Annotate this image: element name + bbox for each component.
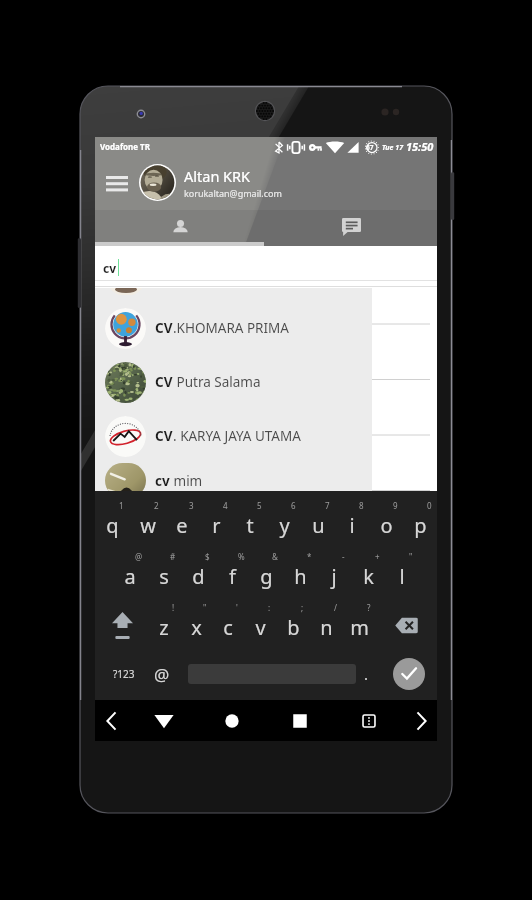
staticText: @ [135,551,143,562]
staticText: 0 [427,500,432,511]
button[interactable]: CV [95,301,372,355]
staticText: # [170,551,176,562]
staticText: - [342,551,345,562]
button[interactable]: Messages tab [266,210,437,246]
button[interactable]: Space [178,648,361,700]
staticText: k [363,563,374,590]
button[interactable]: Recents [278,700,322,741]
button[interactable]: / [310,597,343,648]
button[interactable]: Backspace [376,597,437,648]
staticText: CV [155,319,173,337]
button[interactable]: : [244,597,277,648]
staticText: v [255,614,266,641]
staticText: .KHOMARA PRIMA [173,319,289,337]
button[interactable]: - [317,546,351,597]
button[interactable]: ' [212,597,244,648]
button[interactable]: 8 [335,495,369,546]
button[interactable]: @ [146,648,178,700]
staticText: d [192,563,205,590]
staticText: 3 [189,500,194,511]
staticText: 2 [154,500,159,511]
staticText: s [159,563,169,590]
button[interactable]: Shift [95,597,148,648]
button[interactable]: + [351,546,385,597]
staticText: 4 [223,500,228,511]
staticText: cv [155,472,170,490]
staticText: 1 [119,500,124,511]
button[interactable]: # [147,546,181,597]
staticText: q [106,512,119,539]
button[interactable]: @ [113,546,147,597]
button[interactable]: 7 [301,495,335,546]
staticText: korukaltan@gmail.com [184,187,282,199]
button[interactable]: 1 [95,495,130,546]
button[interactable]: 2 [130,495,165,546]
button[interactable]: 6 [267,495,301,546]
button[interactable]: 0 [403,495,437,546]
staticText: u [312,512,325,539]
button[interactable]: Back [88,700,132,741]
button[interactable]: ? [343,597,376,648]
button[interactable]: ?123 [101,648,146,700]
button[interactable]: Forward [401,700,445,741]
button[interactable]: Contacts tab [95,210,266,246]
staticText: cv [103,260,117,276]
button[interactable]: CV [95,355,372,409]
button[interactable]: 3 [165,495,199,546]
staticText: CV [155,427,173,445]
staticText: p [414,512,427,539]
staticText: 9 [393,500,398,511]
button[interactable]: & [249,546,283,597]
button[interactable]: Menu [347,700,391,741]
button[interactable]: CV [95,409,372,463]
staticText: 6 [291,500,296,511]
staticText: 15:50 [406,139,434,154]
button[interactable]: Done [393,658,425,690]
staticText: a [124,563,136,590]
staticText: Vodafone TR [100,141,150,152]
staticText: 7 [325,500,330,511]
staticText: : [268,602,271,613]
button[interactable]: " [385,546,419,597]
button[interactable]: 5 [233,495,267,546]
staticText: $ [205,551,210,562]
staticText: e [176,512,188,539]
staticText: @ [154,663,170,686]
button[interactable]: * [283,546,317,597]
staticText: ? [367,602,371,613]
staticText: ! [172,602,175,613]
button[interactable]: 9 [369,495,403,546]
button[interactable]: 4 [199,495,233,546]
button[interactable]: ! [148,597,180,648]
staticText: & [272,551,278,562]
button[interactable]: $ [181,546,215,597]
button[interactable]: . [353,648,380,700]
staticText: h [294,563,307,590]
button[interactable]: Home [210,700,254,741]
button[interactable]: % [215,546,249,597]
staticText: l [399,563,405,590]
staticText: ?123 [113,667,135,681]
staticText: " [203,602,207,613]
button[interactable]: cv [95,463,372,498]
button[interactable]: cv [95,246,437,281]
staticText: x [191,614,202,641]
button[interactable]: Open navigation drawer [95,155,139,210]
staticText: / [334,602,337,613]
staticText: b [287,614,300,641]
button[interactable]: ; [277,597,310,648]
staticText: Putra Salama [173,373,261,391]
staticText: " [409,551,413,562]
staticText: i [349,512,355,539]
staticText: . [364,664,369,684]
button[interactable]: Hide keyboard [142,700,186,741]
staticText: t [246,512,254,539]
button[interactable]: " [180,597,212,648]
staticText: r [212,512,221,539]
staticText: n [320,614,333,641]
staticText: ; [301,602,304,613]
staticText: m [350,614,369,641]
staticText: mim [170,472,203,490]
staticText: 67 [366,143,374,152]
staticText: CV [155,373,173,391]
